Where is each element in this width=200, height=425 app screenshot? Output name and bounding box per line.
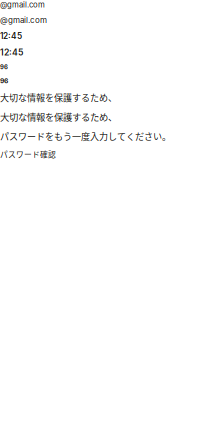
staticText: 大切な情報を保護するため、 [0, 91, 117, 104]
staticText: @gmail.com [0, 15, 47, 25]
staticText: @gmail.com [0, 0, 45, 9]
staticText: パスワード確認 [0, 149, 56, 160]
staticText: 96 [0, 63, 8, 71]
staticText: 大切な情報を保護するため、 [0, 110, 117, 123]
staticText: パスワードをもう一度入力してください。 [0, 129, 171, 143]
staticText: 96 [0, 77, 8, 85]
staticText: 12:45 [0, 31, 22, 41]
staticText: 12:45 [0, 47, 23, 57]
